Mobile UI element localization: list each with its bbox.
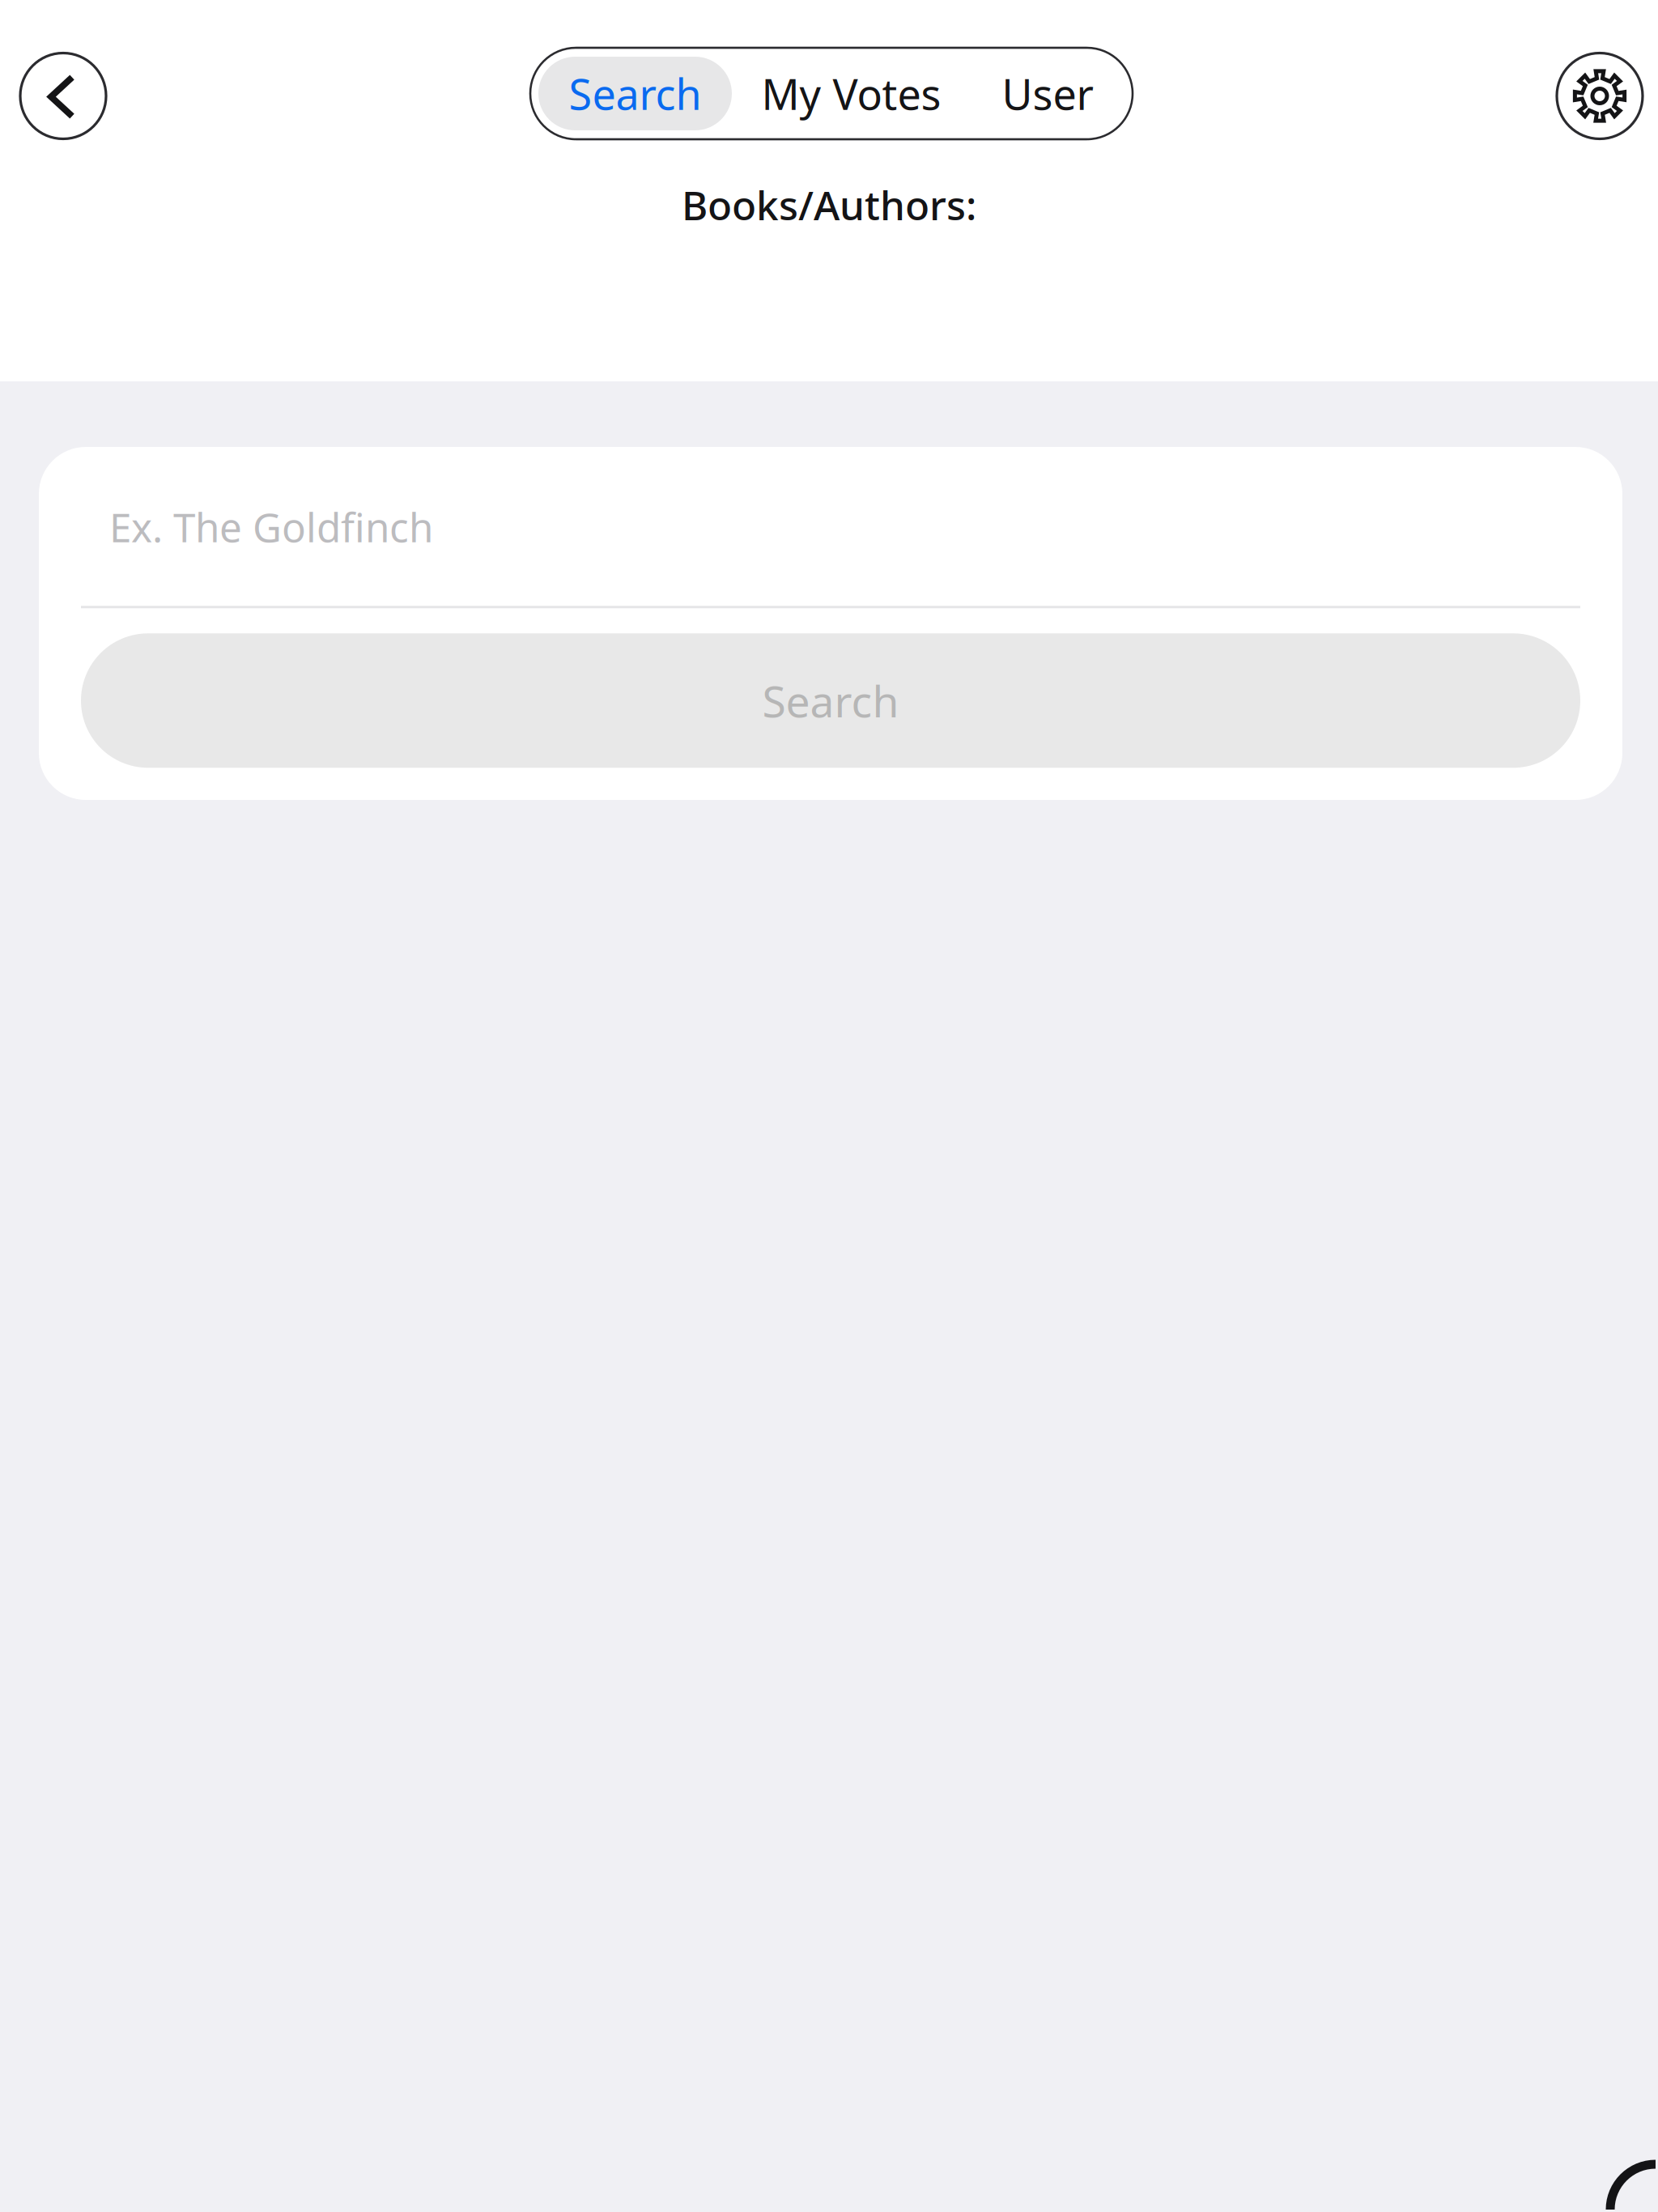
staticText: Search — [569, 66, 701, 122]
staticText: User — [1002, 66, 1093, 122]
staticText: My Votes — [761, 66, 941, 122]
button[interactable]: Settings — [1557, 53, 1643, 139]
button[interactable]: My Votes — [732, 57, 971, 130]
button[interactable]: Search — [81, 633, 1580, 768]
button[interactable]: Search — [538, 57, 732, 130]
button[interactable]: Back — [20, 53, 106, 139]
button[interactable]: User — [971, 57, 1124, 130]
staticText: Books/Authors: — [682, 178, 976, 231]
staticText: Search — [762, 672, 899, 729]
staticText: Ex. The Goldfinch — [109, 500, 433, 553]
